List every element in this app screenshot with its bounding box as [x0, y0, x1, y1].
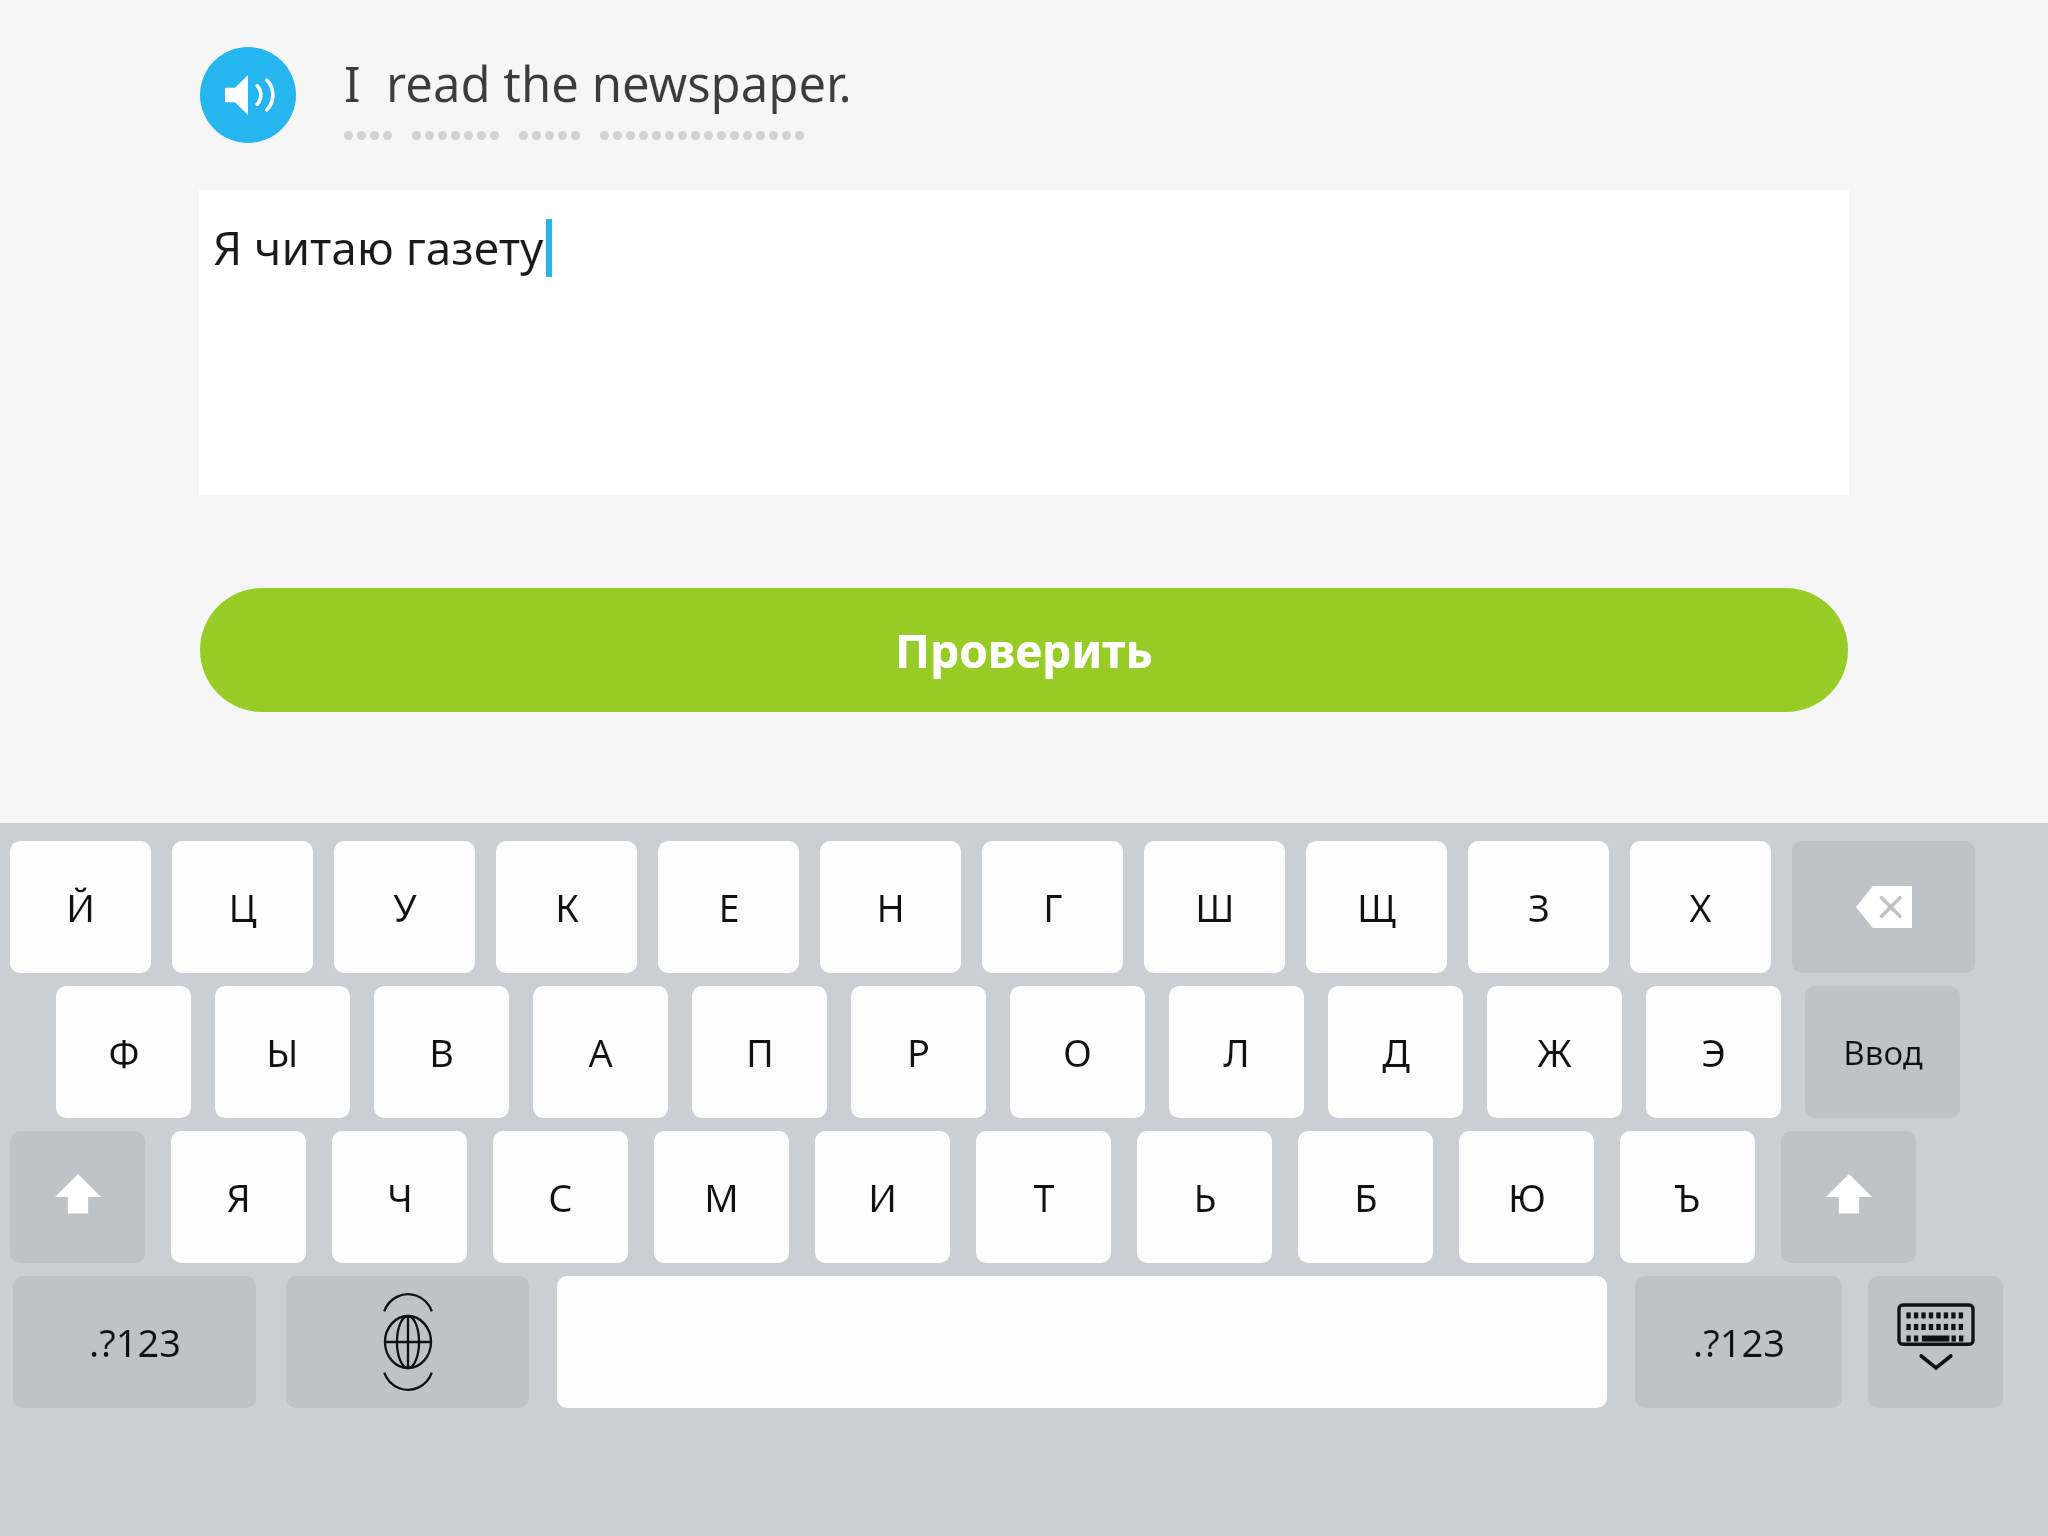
staticText: Ш [1195, 881, 1235, 933]
button[interactable]: Э [1646, 986, 1781, 1118]
button[interactable]: Ж [1487, 986, 1622, 1118]
staticText: Б [1354, 1171, 1378, 1223]
button[interactable]: Ю [1459, 1131, 1594, 1263]
staticText: Н [876, 881, 905, 933]
button[interactable]: Ь [1137, 1131, 1272, 1263]
button[interactable]: Play audio [200, 47, 296, 143]
staticText: Ц [228, 881, 257, 933]
staticText: У [393, 881, 417, 933]
button[interactable]: О [1010, 986, 1145, 1118]
staticText: М [704, 1171, 739, 1223]
staticText: П [746, 1026, 774, 1078]
button[interactable]: Backspace [1792, 841, 1975, 973]
staticText: .?123 [1693, 1316, 1785, 1368]
button[interactable]: Ъ [1620, 1131, 1755, 1263]
staticText: Ы [266, 1026, 299, 1078]
button[interactable]: С [493, 1131, 628, 1263]
button[interactable]: К [496, 841, 637, 973]
staticText: Ъ [1674, 1171, 1701, 1223]
staticText: Э [1701, 1026, 1726, 1078]
staticText: Л [1223, 1026, 1250, 1078]
button[interactable]: Щ [1306, 841, 1447, 973]
staticText: Я читаю газету [213, 216, 544, 279]
button[interactable]: Ы [215, 986, 350, 1118]
staticText: Й [66, 881, 95, 933]
button[interactable]: Х [1630, 841, 1771, 973]
button[interactable]: Й [10, 841, 151, 973]
button[interactable]: Shift [10, 1131, 145, 1263]
button[interactable]: М [654, 1131, 789, 1263]
staticText: Ж [1537, 1026, 1572, 1078]
button[interactable]: Ф [56, 986, 191, 1118]
staticText: Щ [1357, 881, 1396, 933]
button[interactable]: Change language [286, 1276, 529, 1408]
staticText: И [868, 1171, 897, 1223]
button[interactable]: Б [1298, 1131, 1433, 1263]
button[interactable]: Shift [1781, 1131, 1916, 1263]
staticText: С [548, 1171, 573, 1223]
button[interactable]: Я [171, 1131, 306, 1263]
staticText: Е [718, 881, 740, 933]
button[interactable]: Ч [332, 1131, 467, 1263]
button[interactable]: Hide keyboard [1868, 1276, 2003, 1408]
button[interactable]: Е [658, 841, 799, 973]
staticText: Г [1043, 881, 1063, 933]
staticText: Т [1033, 1171, 1055, 1223]
staticText: Р [907, 1026, 930, 1078]
button[interactable]: Ш [1144, 841, 1285, 973]
button[interactable]: Г [982, 841, 1123, 973]
button[interactable]: Д [1328, 986, 1463, 1118]
button[interactable]: П [692, 986, 827, 1118]
button[interactable]: .?123 [13, 1276, 256, 1408]
staticText: Я [226, 1171, 251, 1223]
button[interactable]: Ввод [1805, 986, 1960, 1118]
staticText: О [1063, 1026, 1092, 1078]
staticText: К [555, 881, 579, 933]
button[interactable]: Р [851, 986, 986, 1118]
button[interactable]: Н [820, 841, 961, 973]
staticText: Ч [387, 1171, 413, 1223]
button[interactable]: А [533, 986, 668, 1118]
staticText: Х [1689, 881, 1712, 933]
staticText: Проверить [895, 619, 1153, 682]
button[interactable]: Ц [172, 841, 313, 973]
staticText: Ь [1193, 1171, 1217, 1223]
button[interactable]: Л [1169, 986, 1304, 1118]
staticText: .?123 [89, 1316, 181, 1368]
staticText: Д [1382, 1026, 1410, 1078]
button[interactable]: В [374, 986, 509, 1118]
staticText: Ю [1508, 1171, 1546, 1223]
staticText: I read the newspaper. [344, 50, 852, 117]
button[interactable]: У [334, 841, 475, 973]
button[interactable]: З [1468, 841, 1609, 973]
staticText: Ф [108, 1026, 140, 1078]
button[interactable]: И [815, 1131, 950, 1263]
button[interactable]: Т [976, 1131, 1111, 1263]
button[interactable]: Я читаю газету [199, 190, 1849, 495]
staticText: З [1528, 881, 1550, 933]
staticText: В [429, 1026, 454, 1078]
button[interactable]: Проверить [200, 588, 1848, 712]
staticText: Ввод [1843, 1030, 1923, 1075]
staticText: А [588, 1026, 613, 1078]
button[interactable]: .?123 [1635, 1276, 1842, 1408]
